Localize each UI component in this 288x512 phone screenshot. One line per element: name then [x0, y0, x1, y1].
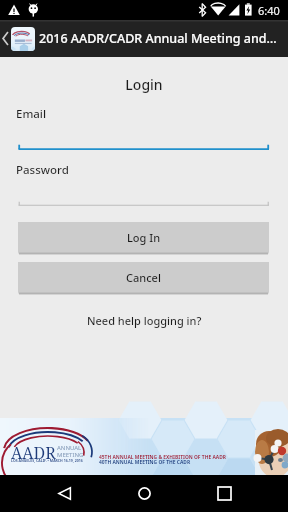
staticText: 6:40: [258, 3, 280, 18]
staticText: Cancel: [126, 270, 161, 285]
staticText: 40TH ANNUAL MEETING OF THE CADR: [99, 459, 191, 466]
staticText: Password: [16, 162, 69, 178]
staticText: LOS ANGELES, CALIF. • MARCH 16-19, 2016: [11, 458, 83, 463]
button[interactable]: Navigate up: [0, 20, 11, 57]
button[interactable]: Log In: [18, 222, 269, 255]
button[interactable]: Back: [40, 479, 88, 508]
button[interactable]: AADR: [0, 418, 288, 475]
button[interactable]: Recent apps: [200, 479, 248, 508]
button[interactable]: [0, 176, 288, 208]
staticText: Login: [0, 75, 288, 94]
button[interactable]: Cancel: [18, 262, 269, 295]
staticText: 2016 AADR/CADR Annual Meeting and…: [39, 30, 277, 47]
staticText: AADR: [11, 442, 56, 464]
staticText: Need help logging in?: [87, 313, 202, 328]
button[interactable]: [0, 120, 288, 152]
button[interactable]: Home: [120, 479, 168, 508]
staticText: 45TH ANNUAL MEETING & EXHIBITION OF THE …: [99, 454, 226, 461]
button[interactable]: Need help logging in?: [77, 308, 212, 333]
staticText: Email: [16, 106, 47, 122]
staticText: ANNUAL MEETING: [57, 444, 84, 459]
staticText: Log In: [127, 230, 161, 245]
